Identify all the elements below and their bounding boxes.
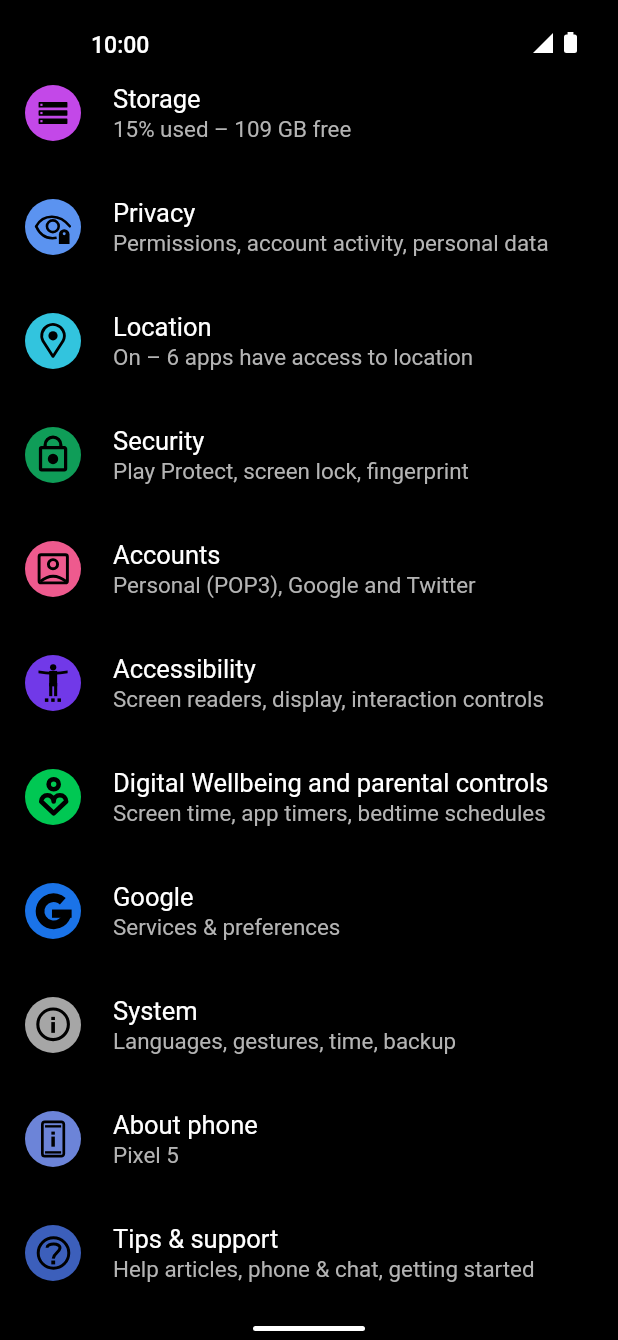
staticText: Google: [113, 882, 194, 912]
staticText: Security: [113, 426, 205, 456]
staticText: Accessibility: [113, 654, 256, 684]
button[interactable]: Google: [0, 866, 618, 980]
staticText: 15% used – 109 GB free: [113, 116, 352, 142]
staticText: Screen readers, display, interaction con…: [113, 686, 544, 712]
button[interactable]: Location: [0, 296, 618, 410]
staticText: Play Protect, screen lock, fingerprint: [113, 458, 469, 484]
staticText: About phone: [113, 1110, 258, 1140]
button[interactable]: System: [0, 980, 618, 1094]
staticText: Accounts: [113, 540, 221, 570]
button[interactable]: Privacy: [0, 182, 618, 296]
button[interactable]: Accounts: [0, 524, 618, 638]
staticText: Tips & support: [113, 1224, 279, 1254]
staticText: Languages, gestures, time, backup: [113, 1028, 457, 1054]
staticText: 10:00: [91, 32, 150, 59]
button[interactable]: Storage: [0, 68, 618, 182]
staticText: Privacy: [113, 198, 196, 228]
button[interactable]: Accessibility: [0, 638, 618, 752]
staticText: Digital Wellbeing and parental controls: [113, 768, 549, 798]
staticText: Location: [113, 312, 212, 342]
button[interactable]: Tips & support: [0, 1208, 618, 1322]
staticText: On – 6 apps have access to location: [113, 344, 474, 370]
button[interactable]: Digital Wellbeing and parental controls: [0, 752, 618, 866]
staticText: Services & preferences: [113, 914, 341, 940]
staticText: Storage: [113, 84, 201, 114]
staticText: Screen time, app timers, bedtime schedul…: [113, 800, 546, 826]
staticText: Help articles, phone & chat, getting sta…: [113, 1256, 535, 1282]
staticText: Pixel 5: [113, 1142, 179, 1168]
staticText: Permissions, account activity, personal …: [113, 230, 549, 256]
staticText: Personal (POP3), Google and Twitter: [113, 572, 476, 598]
button[interactable]: Security: [0, 410, 618, 524]
button[interactable]: About phone: [0, 1094, 618, 1208]
staticText: System: [113, 996, 198, 1026]
